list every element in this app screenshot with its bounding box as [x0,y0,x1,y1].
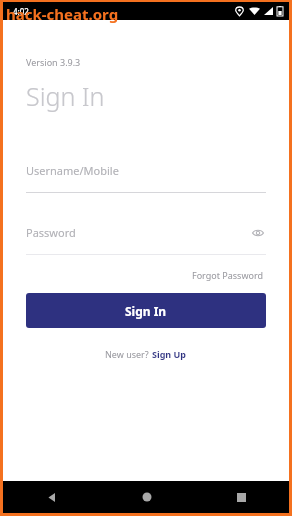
staticText: hack-cheat.org [6,4,119,24]
button[interactable]: Recent apps [194,481,289,513]
staticText: Forgot Password [192,269,264,281]
button[interactable]: Forgot Password [190,267,266,283]
staticText: Sign In [26,79,105,113]
button[interactable]: Password [26,225,266,255]
button[interactable]: Sign Up [152,346,187,362]
button[interactable]: Back [3,481,99,513]
button[interactable]: Show password [250,225,266,241]
staticText: Sign Up [152,348,187,360]
staticText: Sign In [125,303,167,319]
staticText: Version 3.9.3 [26,56,81,68]
staticText: Password [26,225,76,240]
staticText: Username/Mobile [26,163,119,178]
button[interactable]: Username/Mobile [26,163,266,193]
staticText: 4:02 [13,6,29,17]
button[interactable]: Home [99,481,194,513]
button[interactable]: Sign In [26,293,266,328]
staticText: New user? [105,348,152,360]
